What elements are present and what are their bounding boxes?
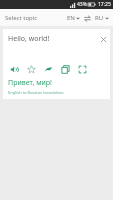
button[interactable]: Favorite	[24, 62, 38, 76]
staticText: English to Russian translation	[8, 90, 64, 95]
staticText: RU	[95, 14, 104, 22]
staticText: 43%	[77, 1, 87, 8]
button[interactable]: Clear	[98, 34, 108, 44]
button[interactable]: EN	[66, 12, 81, 24]
button[interactable]: Listen	[7, 62, 21, 76]
button[interactable]: Fullscreen	[75, 62, 89, 76]
staticText: Hello, world!	[8, 34, 98, 44]
staticText: 17:25	[98, 1, 111, 8]
button[interactable]: Copy	[58, 62, 72, 76]
button[interactable]: Swap languages	[83, 14, 92, 23]
staticText: Привет, мир!	[8, 78, 53, 88]
button[interactable]: RU	[94, 12, 110, 24]
staticText: EN	[67, 14, 75, 22]
button[interactable]: Share	[41, 62, 55, 76]
button[interactable]: Select topic	[0, 11, 43, 25]
staticText: Select topic	[5, 14, 38, 22]
